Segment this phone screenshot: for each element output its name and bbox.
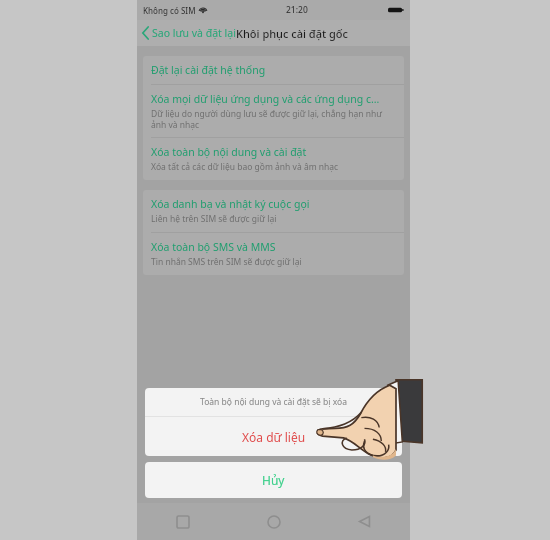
- button[interactable]: Xóa dữ liệu: [145, 417, 402, 456]
- button[interactable]: Recent apps: [137, 503, 228, 540]
- button[interactable]: Sao lưu và đặt lại: [137, 20, 240, 46]
- staticText: Xóa dữ liệu: [242, 429, 306, 445]
- staticText: Xóa tất cả các dữ liệu bao gồm ảnh và âm…: [151, 161, 339, 173]
- button[interactable]: Xóa mọi dữ liệu ứng dụng và các ứng dụng…: [143, 85, 404, 137]
- staticText: Toàn bộ nội dung và cài đặt sẽ bị xóa: [200, 396, 347, 408]
- staticText: Khôi phục cài đặt gốc: [236, 26, 348, 41]
- staticText: Hủy: [262, 472, 285, 488]
- staticText: Xóa danh bạ và nhật ký cuộc gọi: [151, 197, 310, 211]
- staticText: Tin nhắn SMS trên SIM sẽ được giữ lại: [151, 256, 302, 268]
- button[interactable]: Đặt lại cài đặt hệ thống: [143, 56, 404, 84]
- staticText: Liên hệ trên SIM sẽ được giữ lại: [151, 213, 277, 225]
- staticText: Không có SIM: [143, 5, 196, 16]
- staticText: Đặt lại cài đặt hệ thống: [151, 63, 266, 77]
- staticText: Xóa mọi dữ liệu ứng dụng và các ứng dụng…: [151, 92, 380, 106]
- staticText: 21:20: [286, 4, 308, 16]
- staticText: Dữ liệu do người dùng lưu sẽ được giữ lạ…: [151, 108, 396, 130]
- button[interactable]: Hủy: [145, 462, 402, 498]
- button[interactable]: Xóa toàn bộ nội dung và cài đặt: [143, 138, 404, 180]
- staticText: Sao lưu và đặt lại: [152, 26, 236, 40]
- button[interactable]: Xóa danh bạ và nhật ký cuộc gọi: [143, 190, 404, 232]
- staticText: Xóa toàn bộ nội dung và cài đặt: [151, 145, 307, 159]
- staticText: Xóa toàn bộ SMS và MMS: [151, 240, 276, 254]
- button[interactable]: Xóa toàn bộ SMS và MMS: [143, 233, 404, 275]
